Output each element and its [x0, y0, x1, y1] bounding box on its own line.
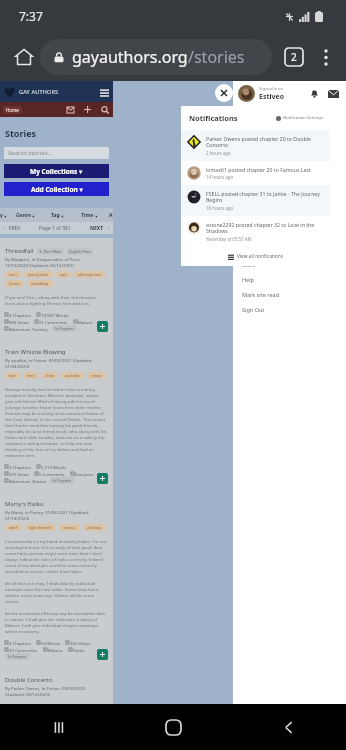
- button[interactable]: men: [5, 271, 21, 278]
- button[interactable]: Mark site read: [233, 287, 346, 302]
- button[interactable]: Parker Owens posted chapter 20 to Double…: [181, 130, 330, 161]
- button[interactable]: lomax61 posted chapter 20 to Famous Last: [181, 161, 330, 185]
- button[interactable]: australia: [61, 372, 84, 379]
- button[interactable]: love: [5, 372, 20, 379]
- staticText: 25 Comments: [9, 647, 38, 653]
- button[interactable]: romance: [87, 372, 105, 379]
- button[interactable]: Double Concerto: [5, 676, 53, 684]
- staticText: 5 Comments: [39, 471, 65, 477]
- button[interactable]: Train Whistle Blowing: [5, 348, 66, 356]
- button[interactable]: Help: [233, 272, 346, 287]
- staticText: philosophy: [87, 525, 101, 530]
- button[interactable]: Add Collection ▾: [4, 182, 109, 196]
- staticText: My Collections ▾: [30, 167, 83, 176]
- button[interactable]: Home: [3, 106, 22, 114]
- staticText: love: [9, 373, 16, 378]
- button[interactable]: Marty's Haiku: [5, 500, 44, 508]
- staticText: Help: [242, 276, 254, 283]
- staticText: By quokka, in Fiction. 05/03/2021 (Updat…: [5, 357, 93, 363]
- staticText: (Updated: 05/14/2023): [5, 691, 51, 697]
- staticText: Tag: [51, 212, 60, 219]
- staticText: alternate earth: [78, 272, 101, 277]
- button[interactable]: Threadfall: [5, 247, 34, 255]
- staticText: 5,513 Words: [41, 464, 66, 470]
- staticText: Authors: [109, 212, 113, 219]
- staticText: 01/04/2023): [5, 363, 30, 369]
- button[interactable]: gayauthors.org: [40, 39, 272, 75]
- staticText: Category: [0, 212, 3, 219]
- button[interactable]: Create: [82, 104, 93, 115]
- button[interactable]: View all notifications: [181, 247, 330, 266]
- button[interactable]: Authors: [105, 208, 113, 222]
- staticText: 883 Views: [9, 319, 29, 325]
- staticText: Home: [6, 107, 19, 113]
- staticText: By Parker Owens, in Fiction. 09/20/2020: [5, 685, 85, 691]
- button[interactable]: Tabs: [278, 41, 310, 73]
- button[interactable]: More options: [310, 41, 342, 73]
- staticText: Mark site read: [242, 291, 280, 298]
- staticText: In Progress: [8, 654, 27, 659]
- staticText: adult: [9, 525, 18, 530]
- staticText: 64 Words: [41, 640, 60, 646]
- button[interactable]: Store: [233, 257, 346, 272]
- button[interactable]: teen: [23, 372, 39, 379]
- staticText: 2: [291, 50, 297, 64]
- staticText: Stories: [5, 127, 37, 139]
- staticText: Adventure, Drama: [9, 478, 46, 484]
- button[interactable]: Add to collection: [97, 321, 108, 332]
- staticText: Everyone: [75, 471, 94, 477]
- button[interactable]: Tag: [41, 208, 73, 222]
- button[interactable]: alternate earth: [74, 271, 105, 278]
- button[interactable]: light-hearted: [25, 524, 56, 531]
- button[interactable]: young adult: [24, 271, 53, 278]
- button[interactable]: Search stories...: [4, 147, 109, 159]
- button[interactable]: philosophy: [83, 524, 105, 531]
- button[interactable]: Home: [8, 41, 40, 73]
- button[interactable]: Recents: [0, 704, 116, 750]
- staticText: 3. Part Wear: [39, 249, 62, 254]
- staticText: 475 Views: [9, 471, 29, 477]
- button[interactable]: My Collections ▾: [4, 164, 109, 178]
- button[interactable]: Back: [231, 704, 346, 750]
- button[interactable]: Category: [0, 208, 9, 222]
- staticText: ‹ PREV: [3, 225, 21, 232]
- button[interactable]: FSELL posted chapter 31 to Jamie - The J…: [181, 185, 330, 216]
- staticText: ▾: [31, 213, 35, 219]
- staticText: Estiveo: [259, 92, 285, 102]
- staticText: Notification Settings: [283, 115, 323, 121]
- staticText: By Maagrim, in Dragonriders of Pern.: [5, 256, 81, 262]
- button[interactable]: Inbox: [65, 104, 76, 115]
- button[interactable]: future: [5, 280, 24, 287]
- staticText: Sign Out: [242, 306, 265, 313]
- staticText: 4 Chapters: [9, 312, 31, 318]
- button[interactable]: Messages: [328, 88, 339, 99]
- button[interactable]: epic: [56, 271, 71, 278]
- button[interactable]: Close: [215, 84, 233, 102]
- button[interactable]: friendship: [27, 280, 53, 287]
- button[interactable]: Alerts: [309, 88, 320, 99]
- button[interactable]: Menu: [98, 86, 110, 98]
- button[interactable]: serious: [59, 524, 80, 531]
- staticText: View all notifications: [237, 253, 284, 260]
- staticText: teen: [27, 373, 35, 378]
- staticText: gayauthors.org: [72, 46, 188, 68]
- staticText: romance: [91, 373, 101, 378]
- button[interactable]: Time: [73, 208, 105, 222]
- staticText: epic: [60, 272, 67, 277]
- button[interactable]: Sign Out: [233, 302, 346, 317]
- button[interactable]: adult: [5, 524, 22, 531]
- staticText: NEXT: [90, 225, 104, 232]
- button[interactable]: Home: [116, 704, 231, 750]
- button[interactable]: Add to collection: [97, 649, 108, 660]
- staticText: 18,587 Words: [41, 312, 69, 318]
- button[interactable]: astone2292 posted chapter 32 to Love in …: [181, 216, 330, 247]
- button[interactable]: Add to collection: [97, 473, 108, 484]
- button[interactable]: train: [42, 372, 58, 379]
- button[interactable]: Genre: [9, 208, 41, 222]
- staticText: ▾: [94, 213, 98, 219]
- staticText: 16 hours ago: [206, 205, 234, 211]
- staticText: 4 Chapters: [9, 640, 31, 646]
- staticText: young adult: [28, 272, 49, 277]
- staticText: Adventure, Fantasy: [9, 326, 48, 332]
- button[interactable]: Search: [99, 104, 110, 115]
